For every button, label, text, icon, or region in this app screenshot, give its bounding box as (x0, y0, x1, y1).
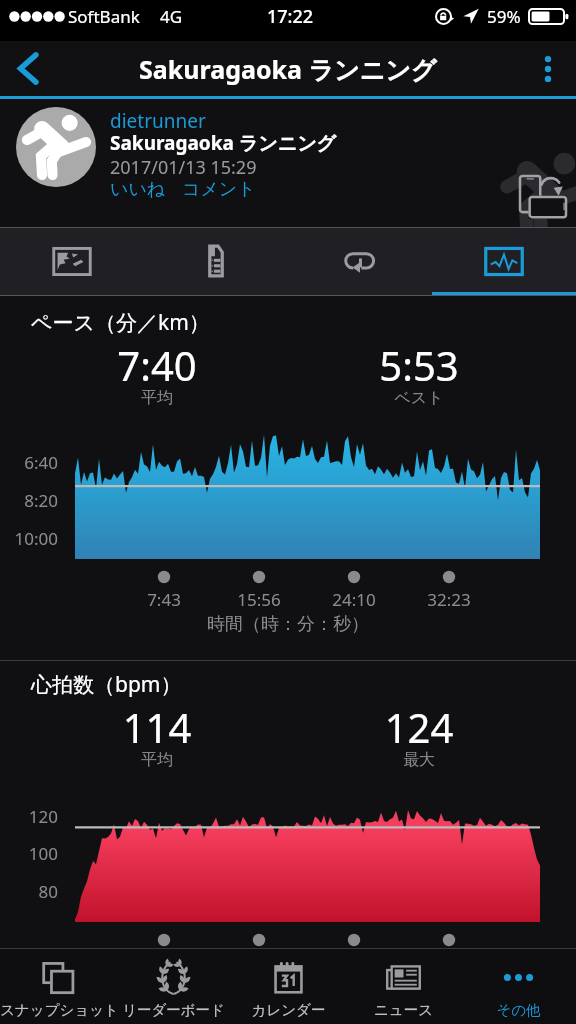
button[interactable]: Charts (432, 227, 576, 295)
button[interactable]: いいね (110, 178, 166, 201)
button[interactable]: dietrunner (110, 108, 206, 134)
staticText: リーダーボード (116, 1001, 231, 1019)
staticText: 124 (299, 700, 539, 754)
staticText: 2017/01/13 15:29 (110, 155, 257, 180)
staticText: 8:20 (0, 489, 58, 512)
staticText: ベスト (299, 388, 539, 408)
staticText: 4G (160, 5, 183, 28)
button[interactable]: スナップショット (0, 949, 116, 1024)
staticText: 24:10 (309, 588, 399, 611)
staticText: カレンダー (231, 1001, 346, 1019)
button[interactable]: カレンダー (231, 949, 346, 1024)
staticText: その他 (461, 1001, 576, 1019)
button[interactable]: Back (0, 41, 56, 96)
staticText: 32:23 (404, 588, 494, 611)
staticText: 7:43 (119, 588, 209, 611)
button[interactable]: Details (144, 227, 288, 295)
staticText: 平均 (37, 750, 277, 770)
staticText: 平均 (37, 388, 277, 408)
button[interactable]: コメント (182, 178, 256, 201)
staticText: Sakuragaoka ランニング (110, 130, 337, 156)
staticText: SoftBank (68, 5, 140, 28)
staticText: 114 (37, 700, 277, 754)
staticText: Sakuragaoka ランニング (139, 52, 437, 86)
staticText: 120 (0, 805, 58, 828)
button[interactable]: Laps (288, 227, 432, 295)
button[interactable]: More options (520, 41, 576, 96)
button[interactable]: リーダーボード (116, 949, 231, 1024)
staticText: 100 (0, 842, 58, 865)
button[interactable]: ニュース (346, 949, 461, 1024)
staticText: ペース（分／km） (31, 308, 210, 337)
button[interactable]: その他 (461, 949, 576, 1024)
button[interactable]: Map (0, 227, 144, 295)
staticText: 80 (0, 880, 58, 903)
staticText: 7:40 (37, 338, 277, 392)
staticText: 6:40 (0, 451, 58, 474)
button[interactable]: Rotate screen (508, 165, 576, 225)
staticText: スナップショット (0, 1001, 116, 1019)
staticText: 15:56 (214, 588, 304, 611)
staticText: 17:22 (240, 4, 340, 29)
staticText: 10:00 (0, 527, 58, 550)
staticText: 時間（時：分：秒） (0, 613, 576, 636)
staticText: 心拍数（bpm） (31, 670, 182, 699)
staticText: 最大 (299, 750, 539, 770)
staticText: 59% (487, 5, 521, 28)
staticText: 5:53 (299, 338, 539, 392)
staticText: ニュース (346, 1001, 461, 1019)
